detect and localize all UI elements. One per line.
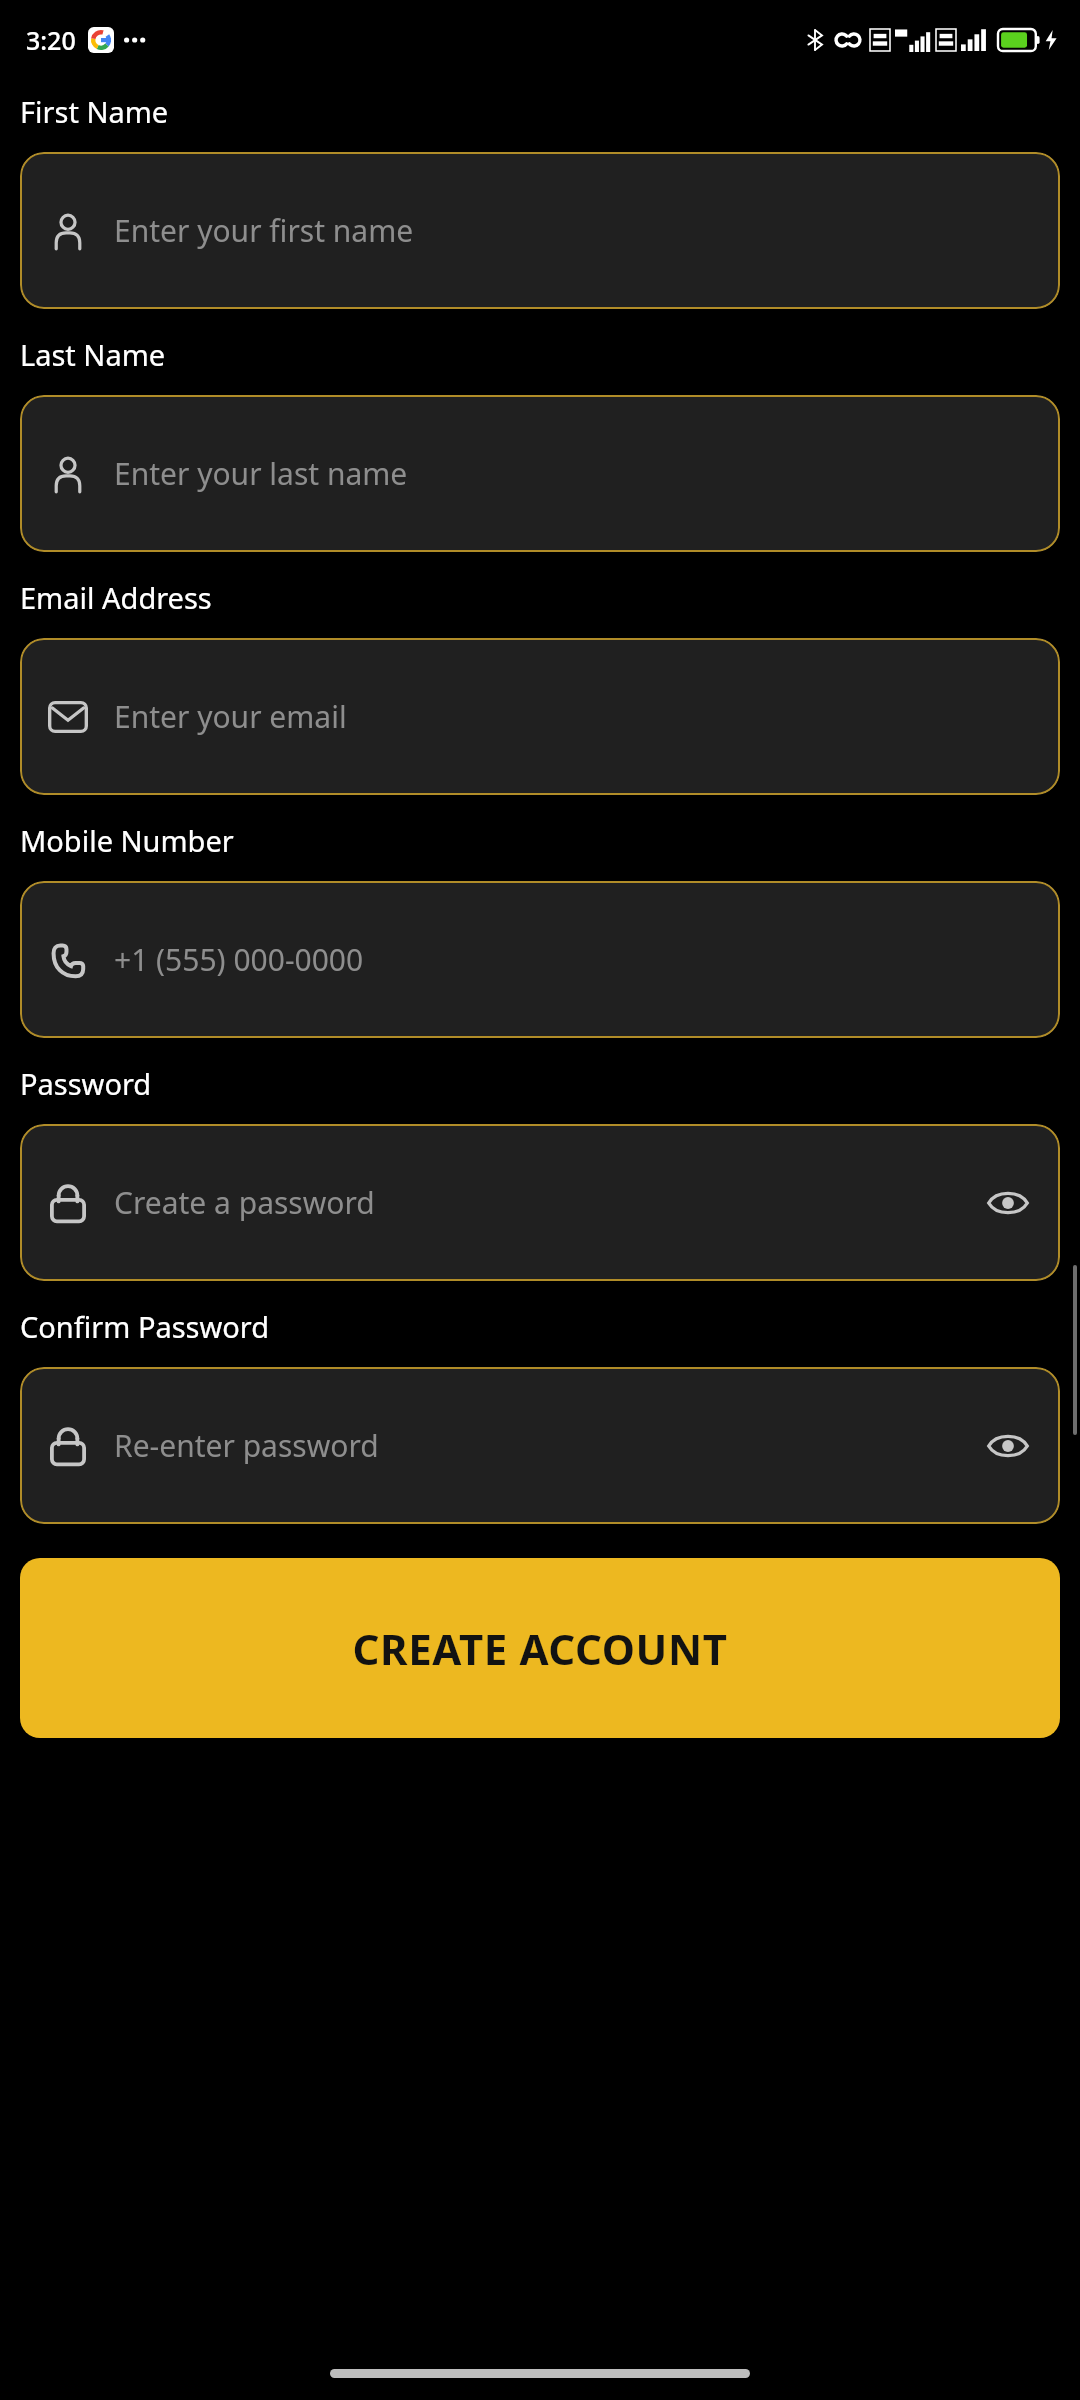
staticText: First Name: [20, 92, 169, 131]
staticText: Re-enter password: [114, 1425, 982, 1466]
staticText: Enter your email: [114, 696, 1034, 737]
button[interactable]: Show password: [982, 1177, 1034, 1229]
staticText: Confirm Password: [20, 1307, 270, 1346]
staticText: Mobile Number: [20, 821, 234, 860]
button[interactable]: Enter your last name: [20, 395, 1060, 552]
staticText: CREATE ACCOUNT: [352, 1620, 728, 1677]
button[interactable]: CREATE ACCOUNT: [20, 1558, 1060, 1738]
button[interactable]: Create a password: [20, 1124, 1060, 1281]
button[interactable]: Enter your email: [20, 638, 1060, 795]
staticText: Enter your first name: [114, 210, 1034, 251]
button[interactable]: Show password: [982, 1420, 1034, 1472]
staticText: Create a password: [114, 1182, 982, 1223]
staticText: Password: [20, 1064, 152, 1103]
staticText: Enter your last name: [114, 453, 1034, 494]
staticText: +1 (555) 000-0000: [114, 939, 1034, 980]
button[interactable]: Enter your first name: [20, 152, 1060, 309]
button[interactable]: Re-enter password: [20, 1367, 1060, 1524]
staticText: 3:20: [26, 23, 76, 57]
button[interactable]: +1 (555) 000-0000: [20, 881, 1060, 1038]
staticText: Email Address: [20, 578, 212, 617]
staticText: Last Name: [20, 335, 166, 374]
